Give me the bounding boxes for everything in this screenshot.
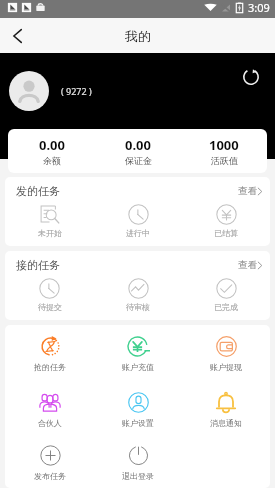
button[interactable]: 合伙人	[5, 391, 94, 428]
staticText: 查看	[238, 185, 257, 197]
staticText: 已结算	[214, 228, 238, 238]
staticText: 1000	[209, 136, 239, 154]
staticText: 发布任务	[34, 471, 66, 481]
staticText: 待审核	[126, 302, 150, 312]
button[interactable]: Back	[2, 21, 32, 51]
staticText: 我的	[125, 28, 151, 44]
button[interactable]: 待审核	[94, 278, 182, 312]
staticText: 余额	[43, 155, 61, 166]
staticText: ( 9272 )	[61, 85, 92, 97]
staticText: 接的任务	[16, 258, 60, 272]
staticText: 待提交	[38, 302, 62, 312]
staticText: 退出登录	[122, 471, 154, 481]
staticText: 活跃值	[211, 155, 238, 166]
staticText: 未开始	[38, 228, 62, 238]
button[interactable]: 账户设置	[94, 391, 182, 428]
staticText: 消息通知	[210, 418, 242, 428]
button[interactable]: 查看	[228, 256, 270, 274]
staticText: 进行中	[126, 228, 150, 238]
button[interactable]: 抢的任务	[5, 335, 94, 372]
staticText: 查看	[238, 259, 257, 271]
button[interactable]: 发布任务	[5, 444, 94, 481]
button[interactable]: 账户提现	[182, 335, 270, 372]
button[interactable]: 0.00	[8, 129, 95, 173]
staticText: 已完成	[214, 302, 238, 312]
button[interactable]: 已完成	[182, 278, 270, 312]
staticText: 发的任务	[16, 184, 60, 198]
button[interactable]: 未开始	[5, 204, 94, 238]
button[interactable]: 1000	[181, 129, 267, 173]
button[interactable]: 查看	[228, 182, 270, 200]
button[interactable]: 退出登录	[94, 444, 182, 481]
staticText: 抢的任务	[34, 362, 66, 372]
staticText: 账户充值	[122, 362, 154, 372]
staticText: 0.00	[125, 136, 151, 154]
button[interactable]: 账户充值	[94, 335, 182, 372]
button[interactable]: 0.00	[95, 129, 181, 173]
button[interactable]: 待提交	[5, 278, 94, 312]
button[interactable]: 消息通知	[182, 391, 270, 428]
staticText: 保证金	[125, 155, 152, 166]
staticText: 账户提现	[210, 362, 242, 372]
staticText: 0.00	[39, 136, 65, 154]
staticText: 合伙人	[38, 418, 62, 428]
button[interactable]: Avatar	[9, 71, 49, 111]
button[interactable]: 进行中	[94, 204, 182, 238]
staticText: 3:09	[248, 0, 270, 15]
button[interactable]: Refresh	[240, 66, 262, 88]
staticText: 账户设置	[122, 418, 154, 428]
button[interactable]: 已结算	[182, 204, 270, 238]
